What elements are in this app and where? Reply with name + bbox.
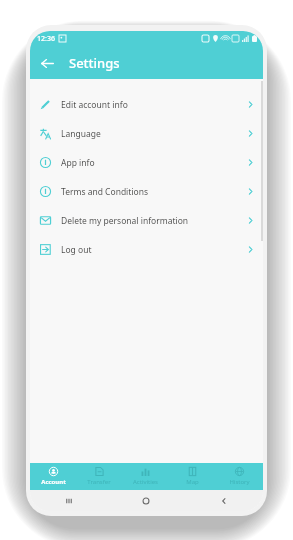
- button[interactable]: Delete my personal information: [30, 206, 263, 235]
- button[interactable]: Terms and Conditions: [30, 177, 263, 206]
- button[interactable]: Transfer: [76, 463, 122, 490]
- button[interactable]: History: [216, 463, 263, 490]
- button[interactable]: Log out: [30, 235, 263, 264]
- button[interactable]: Map: [169, 463, 216, 490]
- button[interactable]: Back: [185, 490, 263, 511]
- button[interactable]: Edit account info: [30, 90, 263, 119]
- button[interactable]: Account: [30, 463, 76, 490]
- button[interactable]: Language: [30, 119, 263, 148]
- staticText: Settings: [69, 54, 120, 72]
- staticText: Account: [41, 478, 66, 486]
- staticText: App info: [61, 157, 237, 169]
- staticText: 12:36: [37, 34, 55, 44]
- button[interactable]: Back: [35, 51, 59, 75]
- staticText: Delete my personal information: [61, 215, 237, 227]
- staticText: Map: [186, 478, 199, 486]
- button[interactable]: Activities: [122, 463, 169, 490]
- staticText: Language: [61, 128, 237, 140]
- staticText: History: [229, 478, 250, 486]
- staticText: Edit account info: [61, 99, 237, 111]
- staticText: Activities: [133, 478, 158, 486]
- button[interactable]: Home: [107, 490, 185, 511]
- button[interactable]: Recents: [30, 490, 107, 511]
- staticText: Terms and Conditions: [61, 186, 237, 198]
- staticText: Transfer: [87, 478, 111, 486]
- staticText: Log out: [61, 244, 237, 256]
- button[interactable]: App info: [30, 148, 263, 177]
